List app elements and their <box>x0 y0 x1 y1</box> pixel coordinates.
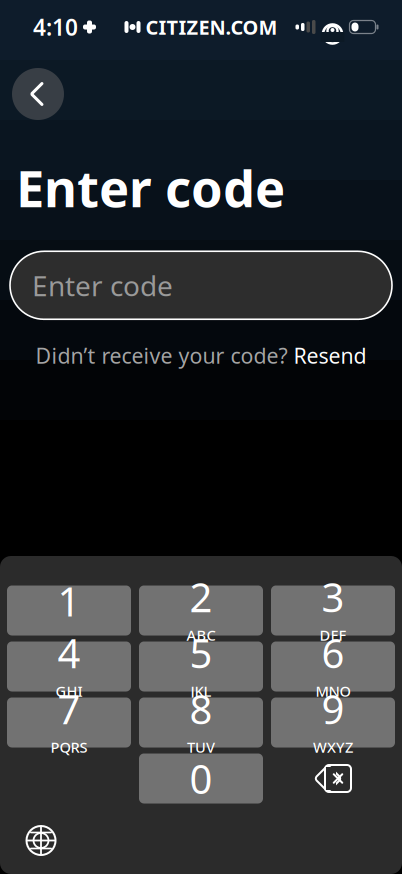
staticText: CITIZEN.COM <box>145 14 277 40</box>
staticText: 5 <box>189 626 212 679</box>
button[interactable]: 6 <box>271 641 395 691</box>
staticText: 6 <box>321 626 344 679</box>
staticText: TUV <box>187 737 215 757</box>
staticText: ABC <box>186 625 215 645</box>
staticText: PQRS <box>50 737 87 757</box>
staticText: GHI <box>55 681 82 701</box>
button[interactable]: 2 <box>139 585 263 635</box>
staticText: 3 <box>321 570 344 623</box>
staticText: 4 <box>57 626 80 679</box>
button[interactable]: 1 <box>7 585 131 635</box>
staticText: 1 <box>57 574 80 627</box>
button[interactable]: Resend <box>293 341 366 370</box>
button[interactable]: 7 <box>7 697 131 747</box>
staticText: 2 <box>189 570 212 623</box>
staticText: Resend <box>293 341 366 370</box>
staticText: 4:10 <box>33 12 78 42</box>
staticText: 9 <box>321 682 344 735</box>
button[interactable]: 8 <box>139 697 263 747</box>
staticText: Didn’t receive your code? <box>35 341 287 370</box>
button[interactable]: Delete <box>271 753 395 803</box>
button[interactable]: Enter code <box>10 251 392 319</box>
button[interactable]: 4 <box>7 641 131 691</box>
staticText: Enter code <box>16 154 285 221</box>
button[interactable]: 3 <box>271 585 395 635</box>
staticText: DEF <box>319 625 346 645</box>
button[interactable]: Change keyboard language <box>14 813 68 867</box>
button[interactable]: 0 <box>139 753 263 803</box>
button[interactable]: 9 <box>271 697 395 747</box>
staticText: WXYZ <box>313 737 353 757</box>
staticText: MNO <box>315 681 350 701</box>
staticText: 7 <box>57 682 80 735</box>
staticText: 8 <box>189 682 212 735</box>
button[interactable]: 5 <box>139 641 263 691</box>
staticText: 0 <box>189 752 212 805</box>
button[interactable]: Back <box>12 68 64 120</box>
staticText: Enter code <box>32 267 173 304</box>
staticText: JKL <box>190 681 211 701</box>
